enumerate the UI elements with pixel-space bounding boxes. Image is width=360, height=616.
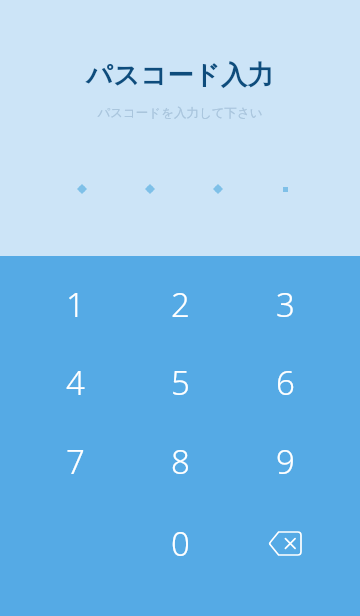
staticText: 9 (276, 439, 295, 484)
button[interactable]: 8 (132, 426, 228, 496)
staticText: 8 (171, 439, 190, 484)
staticText: 1 (66, 282, 85, 327)
button[interactable]: 2 (132, 269, 228, 339)
button[interactable]: 3 (237, 269, 333, 339)
button[interactable]: 5 (132, 347, 228, 417)
button[interactable]: 7 (27, 426, 123, 496)
button[interactable]: 4 (27, 347, 123, 417)
staticText: 7 (66, 439, 85, 484)
staticText: パスコードを入力して下さい (97, 105, 263, 121)
staticText: 3 (276, 282, 295, 327)
button[interactable]: 0 (132, 508, 228, 578)
staticText: 2 (171, 282, 190, 327)
staticText: パスコード入力 (86, 59, 274, 92)
button[interactable]: Backspace (237, 508, 333, 578)
staticText: 5 (171, 360, 190, 405)
button[interactable]: 9 (237, 426, 333, 496)
staticText: 6 (276, 360, 295, 405)
button[interactable]: 1 (27, 269, 123, 339)
button[interactable]: 6 (237, 347, 333, 417)
staticText: 4 (66, 360, 85, 405)
staticText: 0 (171, 521, 190, 566)
